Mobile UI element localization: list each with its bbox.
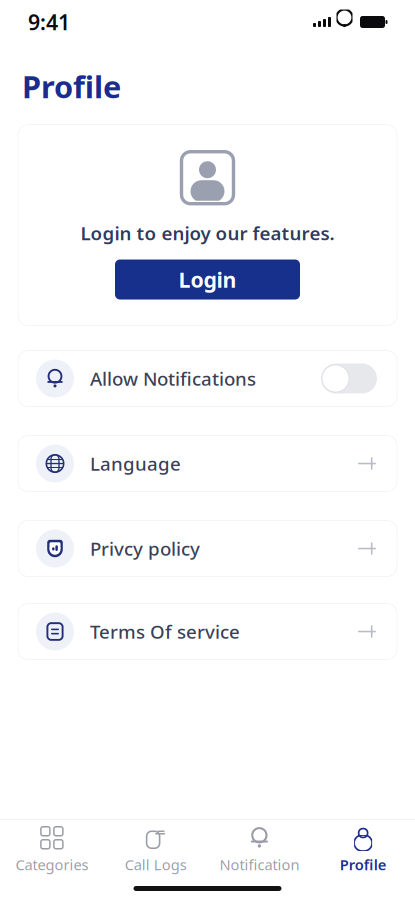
staticText: Login bbox=[178, 265, 236, 294]
staticText: Call Logs bbox=[125, 855, 187, 874]
staticText: Categories bbox=[15, 855, 88, 874]
button[interactable]: Language bbox=[18, 435, 397, 491]
staticText: Profile bbox=[22, 66, 121, 107]
staticText: Login to enjoy our features. bbox=[80, 221, 334, 245]
button[interactable]: Login bbox=[115, 259, 300, 299]
staticText: Allow Notifications bbox=[90, 366, 256, 391]
button[interactable]: Notification bbox=[207, 816, 311, 880]
button[interactable]: Profile bbox=[311, 816, 415, 880]
staticText: Language bbox=[90, 451, 181, 476]
button[interactable]: Privcy policy bbox=[18, 520, 397, 576]
staticText: Notification bbox=[219, 855, 299, 874]
staticText: Privcy policy bbox=[90, 536, 200, 561]
button[interactable]: Categories bbox=[0, 816, 104, 880]
button[interactable]: Terms Of service bbox=[18, 603, 397, 659]
button[interactable]: Allow Notifications bbox=[18, 350, 397, 406]
button[interactable]: Call Logs bbox=[104, 816, 208, 880]
staticText: Profile bbox=[340, 855, 387, 874]
staticText: 9:41 bbox=[28, 8, 70, 36]
staticText: Terms Of service bbox=[90, 619, 240, 644]
